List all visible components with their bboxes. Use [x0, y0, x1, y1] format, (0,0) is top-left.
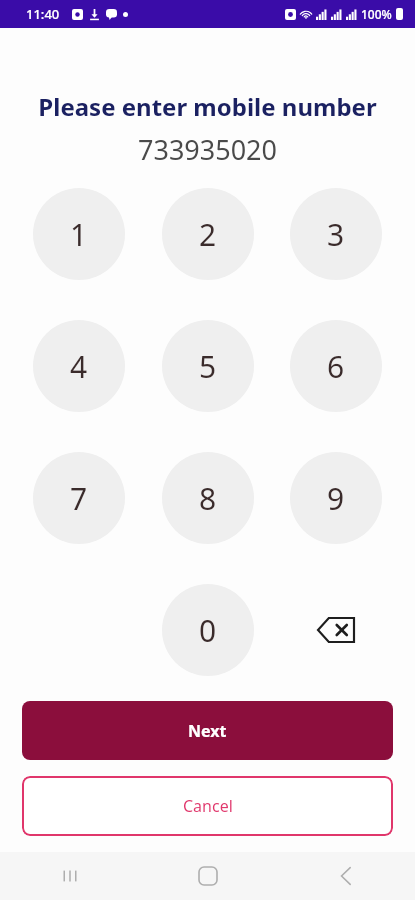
- staticText: 7: [70, 478, 88, 519]
- staticText: 11:40: [26, 5, 60, 23]
- staticText: Please enter mobile number: [0, 90, 415, 123]
- button[interactable]: Cancel: [22, 776, 393, 836]
- button[interactable]: 9: [290, 452, 382, 544]
- button[interactable]: Next: [22, 701, 393, 760]
- button[interactable]: 8: [162, 452, 254, 544]
- staticText: 8: [199, 478, 217, 519]
- staticText: Next: [188, 720, 227, 742]
- button[interactable]: 4: [33, 320, 125, 412]
- staticText: 6: [327, 346, 345, 387]
- staticText: 1: [70, 214, 88, 255]
- staticText: 0: [199, 610, 217, 651]
- button[interactable]: Back: [277, 852, 415, 900]
- button[interactable]: 5: [162, 320, 254, 412]
- button[interactable]: 1: [33, 188, 125, 280]
- button[interactable]: 2: [162, 188, 254, 280]
- button[interactable]: 3: [290, 188, 382, 280]
- staticText: 9: [327, 478, 345, 519]
- staticText: 5: [199, 346, 217, 387]
- staticText: Cancel: [183, 795, 233, 817]
- staticText: 2: [199, 214, 217, 255]
- button[interactable]: Backspace: [290, 584, 382, 676]
- button[interactable]: 6: [290, 320, 382, 412]
- button[interactable]: Recents: [0, 852, 139, 900]
- button[interactable]: Home: [139, 852, 277, 900]
- staticText: 3: [327, 214, 345, 255]
- staticText: 4: [70, 346, 88, 387]
- button[interactable]: 7: [33, 452, 125, 544]
- staticText: 100%: [361, 6, 392, 22]
- button[interactable]: 0: [162, 584, 254, 676]
- staticText: 733935020: [0, 131, 415, 168]
